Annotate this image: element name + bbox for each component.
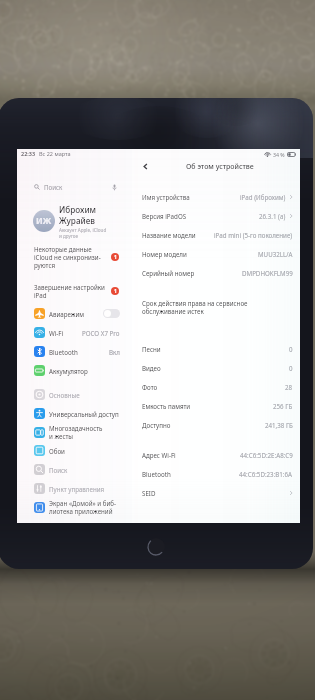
button[interactable]: Пункт управления (34, 479, 120, 498)
staticText: 0 (289, 364, 293, 372)
button[interactable]: Универсальный доступ (34, 404, 120, 423)
staticText: Авиарежим (49, 310, 85, 318)
staticText: 241,38 ГБ (265, 421, 293, 429)
button[interactable]: Назад (138, 159, 152, 173)
staticText: Вс 22 марта (39, 150, 71, 157)
staticText: Поиск (44, 183, 63, 191)
staticText: Аккаунт Apple, iCloud (59, 227, 107, 233)
staticText: ИЖ (36, 215, 52, 227)
staticText: Завершение настройки (34, 283, 105, 291)
staticText: Bluetooth (49, 348, 78, 356)
staticText: iPad (34, 291, 47, 299)
button[interactable]: Доступно (142, 415, 293, 434)
staticText: Об этом устройстве (186, 162, 254, 172)
button[interactable]: Видео (142, 358, 293, 377)
staticText: Иброхим (59, 204, 97, 215)
staticText: Имя устройства (142, 193, 190, 201)
staticText: Номер модели (142, 250, 187, 258)
button[interactable]: Завершение настройки (34, 283, 119, 299)
button[interactable]: Авиарежим (34, 304, 120, 323)
staticText: MUU32LL/A (258, 250, 293, 258)
staticText: Обои (49, 447, 65, 455)
button[interactable]: Обои (34, 441, 120, 460)
button[interactable]: Многозадачность (34, 423, 120, 441)
staticText: Название модели (142, 231, 196, 239)
staticText: 1 (114, 254, 117, 261)
staticText: Bluetooth (142, 470, 171, 478)
staticText: POCO X7 Pro (82, 329, 120, 337)
staticText: Вкл (109, 348, 120, 356)
staticText: DMPDHOKFLM99 (242, 269, 293, 277)
staticText: 44:C6:5D:2E:A8:C9 (240, 451, 293, 459)
staticText: и жесты (49, 432, 74, 440)
button[interactable]: Адрес Wi-Fi (142, 445, 293, 464)
staticText: и другое (59, 233, 79, 239)
button[interactable]: Bluetooth (142, 464, 293, 483)
staticText: 26.3.1 (a) (259, 212, 286, 220)
staticText: 28 (285, 383, 293, 391)
button[interactable]: Основные (34, 385, 120, 404)
button[interactable]: Экран «Домой» и биб- (34, 498, 120, 516)
button[interactable]: Серийный номер (142, 263, 293, 282)
button[interactable]: Поиск (34, 180, 117, 194)
button[interactable]: Аккумулятор (34, 361, 120, 380)
staticText: Фото (142, 383, 158, 391)
staticText: 22:33 (21, 150, 36, 157)
staticText: лиотека приложений (49, 507, 113, 515)
staticText: Многозадачность (49, 424, 103, 432)
button[interactable]: Bluetooth (34, 342, 120, 361)
staticText: Универсальный доступ (49, 410, 119, 418)
staticText: Емкость памяти (142, 402, 191, 410)
staticText: Некоторые данные (34, 245, 92, 253)
button[interactable]: Песни (142, 339, 293, 358)
button[interactable]: SEID (142, 483, 293, 502)
staticText: Адрес Wi-Fi (142, 451, 176, 459)
staticText: Wi-Fi (49, 329, 64, 337)
staticText: Аккумулятор (49, 367, 88, 375)
staticText: Журайев (59, 215, 96, 226)
staticText: 0 (289, 345, 293, 353)
staticText: обслуживание истек (142, 307, 204, 315)
staticText: 256 ГБ (273, 402, 293, 410)
staticText: iPad mini (5-го поколение) (214, 231, 293, 239)
staticText: 1 (114, 288, 117, 295)
button[interactable]: Некоторые данные (34, 245, 119, 269)
staticText: Песни (142, 345, 161, 353)
staticText: Версия iPadOS (142, 212, 187, 220)
button[interactable]: Имя устройства (142, 187, 293, 206)
staticText: Видео (142, 364, 161, 372)
staticText: Срок действия права на сервисное (142, 299, 248, 307)
staticText: Поиск (49, 466, 68, 474)
button[interactable]: Название модели (142, 225, 293, 244)
button[interactable]: Номер модели (142, 244, 293, 263)
staticText: руются (34, 261, 55, 269)
staticText: Пункт управления (49, 485, 105, 493)
staticText: Экран «Домой» и биб- (49, 499, 116, 507)
staticText: SEID (142, 489, 156, 497)
staticText: iCloud не синхронизи- (34, 253, 101, 261)
staticText: iPad (Иброхим) (240, 193, 286, 201)
button[interactable]: Версия iPadOS (142, 206, 293, 225)
staticText: Серийный номер (142, 269, 195, 277)
button[interactable]: ИЖ (33, 202, 127, 240)
button[interactable]: Фото (142, 377, 293, 396)
staticText: Основные (49, 391, 80, 399)
staticText: 44:C6:5D:23:B1:6A (239, 470, 293, 478)
staticText: 34 % (273, 151, 285, 158)
button[interactable]: Емкость памяти (142, 396, 293, 415)
button[interactable]: Поиск (34, 460, 120, 479)
staticText: Доступно (142, 421, 171, 429)
button[interactable]: Wi-Fi (34, 323, 120, 342)
